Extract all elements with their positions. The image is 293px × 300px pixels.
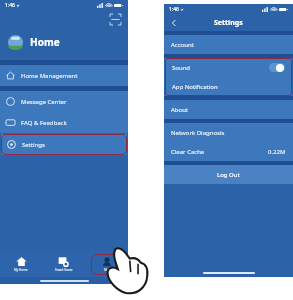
staticText: Message Center	[21, 98, 67, 106]
button[interactable]: Settings	[1, 134, 127, 155]
button[interactable]: Smart Scene	[42, 251, 85, 277]
staticText: Smart Scene	[55, 268, 73, 272]
button[interactable]: App Notification	[165, 77, 292, 96]
button[interactable]: FAQ & Feedback	[0, 112, 128, 133]
button[interactable]: Network Diagnosis	[164, 123, 293, 142]
button[interactable]: Sound	[165, 58, 292, 77]
staticText: Home Management	[21, 72, 78, 80]
staticText: My Home	[14, 268, 28, 272]
button[interactable]: Back	[169, 18, 179, 28]
staticText: Log Out	[217, 171, 240, 179]
staticText: App Notification	[172, 83, 218, 91]
staticText: Home	[30, 35, 60, 49]
staticText: 0.22M	[268, 148, 286, 156]
staticText: Settings	[22, 141, 45, 149]
button[interactable]: Scan	[110, 14, 121, 25]
button[interactable]: About	[164, 100, 293, 119]
button[interactable]: Account	[164, 35, 293, 54]
staticText: Me	[104, 268, 109, 272]
button[interactable]: My Home	[0, 251, 42, 277]
button[interactable]: Clear Cache	[164, 142, 293, 161]
staticText: Sound	[172, 64, 191, 72]
staticText: Settings	[214, 18, 243, 28]
button[interactable]: Me	[91, 254, 122, 275]
staticText: 1:46	[169, 6, 179, 13]
staticText: FAQ & Feedback	[21, 119, 67, 127]
button[interactable]: Home Management	[0, 65, 128, 86]
staticText: Account	[171, 41, 194, 49]
staticText: About	[171, 106, 189, 114]
button[interactable]: Message Center	[0, 91, 128, 112]
button[interactable]: Log Out	[164, 165, 293, 184]
staticText: 1:46	[5, 2, 15, 9]
staticText: Network Diagnosis	[171, 129, 225, 137]
staticText: Clear Cache	[171, 148, 205, 156]
